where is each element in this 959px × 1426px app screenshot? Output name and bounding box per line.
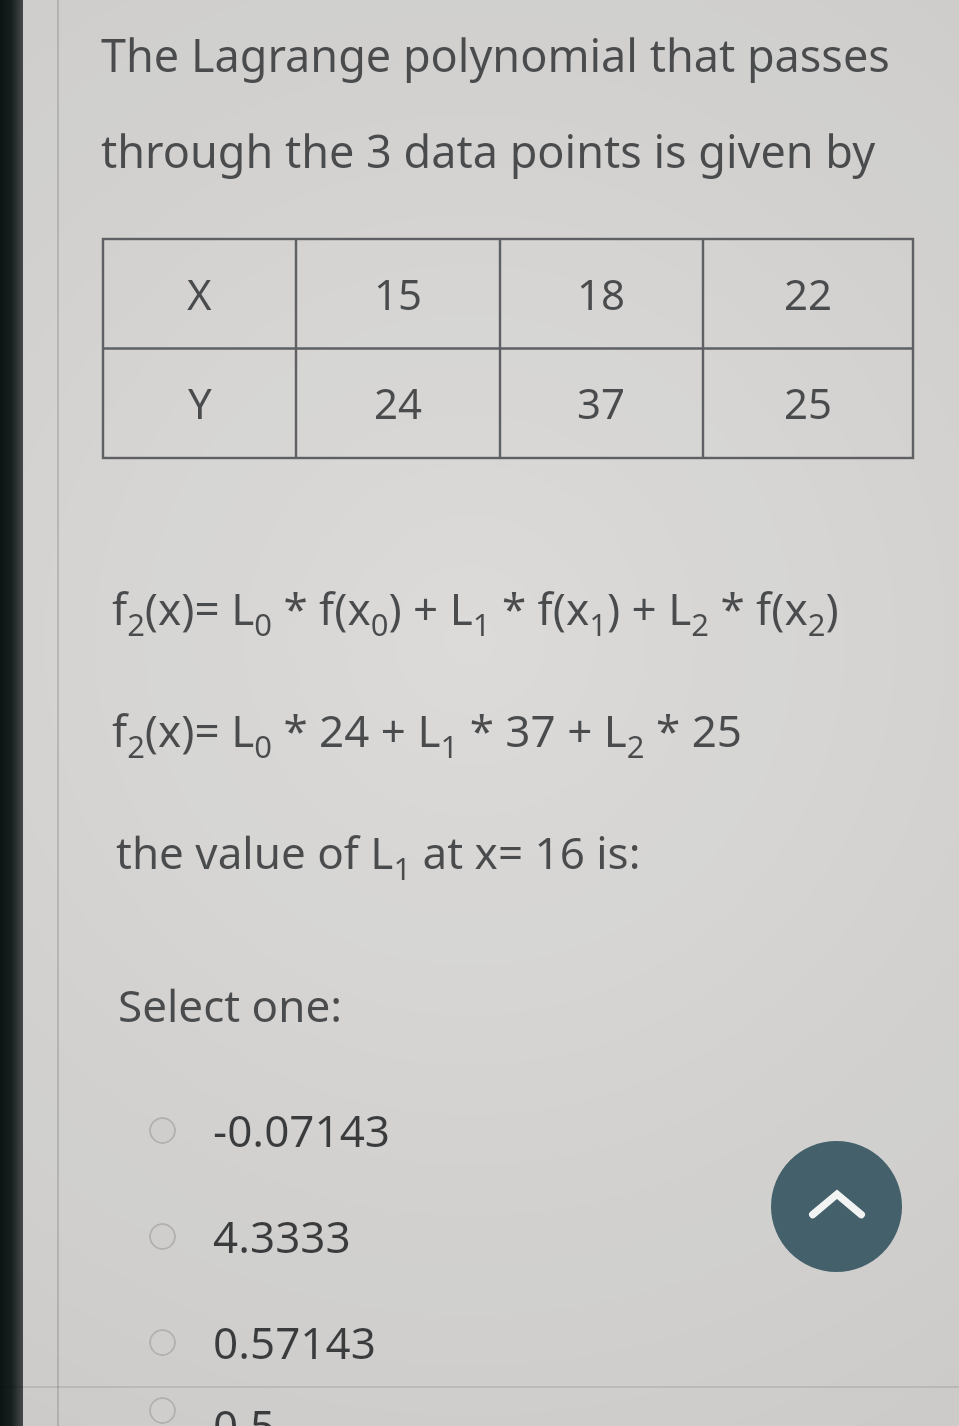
staticText: f2(x)= L0 * 24 + L1 * 37 + L2 * 25 [112, 700, 742, 767]
staticText: Y [188, 374, 212, 431]
staticText: 25 [784, 374, 833, 431]
staticText: 0.5 [213, 1395, 276, 1426]
staticText: -0.07143 [213, 1100, 390, 1160]
staticText: f2(x)= L0 * f(x0) + L1 * f(x1) + L2 * f(… [112, 578, 839, 645]
staticText: 18 [577, 265, 626, 322]
staticText: The Lagrange polynomial that passes [101, 24, 890, 85]
staticText: 0.57143 [213, 1312, 376, 1372]
button[interactable]: -0.07143 [0, 1077, 959, 1183]
button[interactable]: 4.3333 [0, 1183, 959, 1289]
staticText: X [187, 265, 212, 322]
button[interactable]: 0.5 [0, 1395, 959, 1426]
staticText: 24 [374, 374, 423, 431]
staticText: the value of L1 at x= 16 is: [116, 822, 641, 889]
button[interactable]: 0.57143 [0, 1289, 959, 1395]
button[interactable]: Scroll to top [771, 1141, 902, 1272]
staticText: 15 [374, 265, 423, 322]
staticText: 22 [784, 265, 833, 322]
staticText: through the 3 data points is given by [101, 120, 876, 181]
staticText: Select one: [118, 975, 343, 1035]
staticText: 4.3333 [213, 1206, 351, 1266]
staticText: 37 [577, 374, 626, 431]
